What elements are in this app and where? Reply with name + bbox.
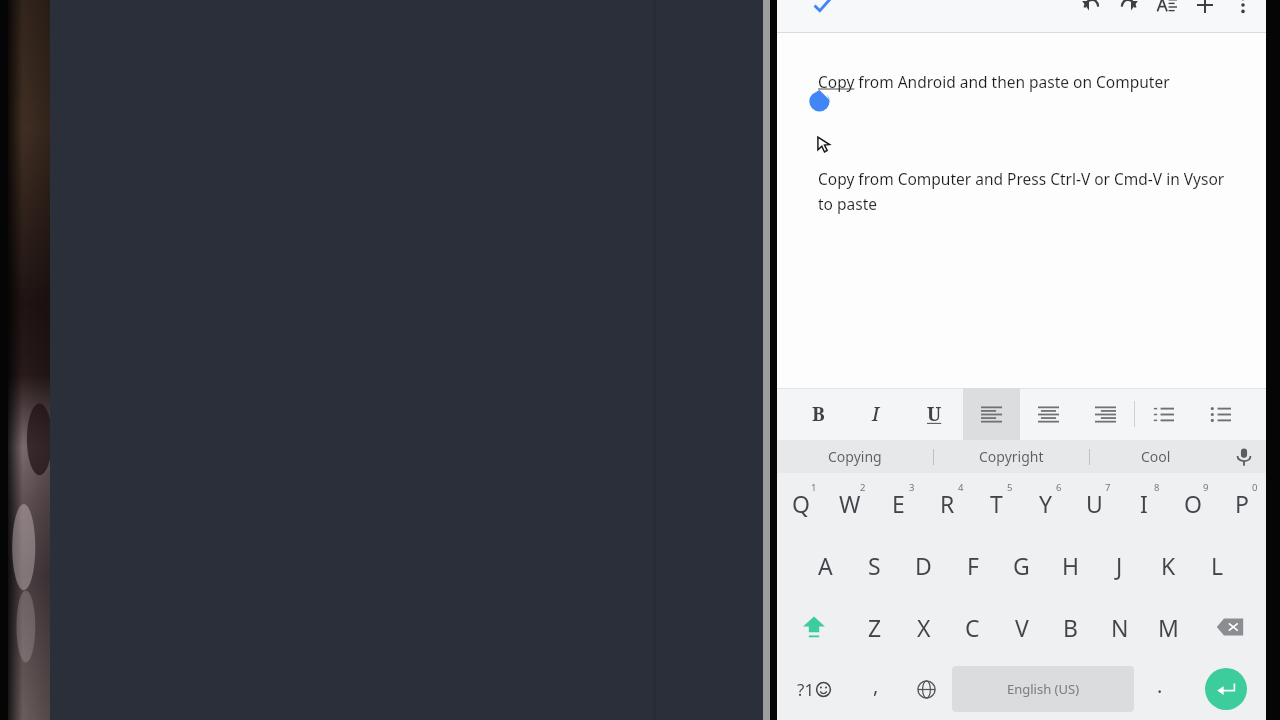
button[interactable]: B	[1046, 596, 1095, 658]
staticText: Y	[1039, 488, 1053, 519]
button[interactable]: B	[789, 388, 847, 440]
button[interactable]: T	[972, 473, 1021, 534]
button[interactable]: Enter	[1205, 668, 1247, 710]
staticText: R	[940, 488, 955, 519]
button[interactable]: I	[1119, 473, 1168, 534]
button[interactable]: J	[1095, 534, 1144, 596]
staticText: Z	[868, 612, 882, 643]
staticText: 2	[860, 481, 866, 494]
button[interactable]: K	[1144, 534, 1193, 596]
button[interactable]: Redo	[1110, 0, 1148, 21]
staticText: 6	[1056, 481, 1062, 494]
button[interactable]: Bulleted list	[1192, 388, 1249, 440]
button[interactable]: .	[1134, 658, 1185, 720]
button[interactable]: ?1	[777, 658, 850, 720]
button[interactable]: Voice input	[1222, 440, 1266, 473]
staticText: ,	[873, 672, 879, 699]
button[interactable]: U	[905, 388, 963, 440]
button[interactable]: Done	[805, 0, 839, 21]
staticText: S	[868, 550, 881, 581]
staticText: B	[812, 401, 825, 427]
button[interactable]: R	[923, 473, 972, 534]
button[interactable]: ,	[850, 658, 901, 720]
staticText: 9	[1203, 481, 1209, 494]
button[interactable]: H	[1046, 534, 1095, 596]
button[interactable]: Y	[1021, 473, 1070, 534]
button[interactable]: Align left	[963, 388, 1020, 440]
staticText: L	[1211, 550, 1224, 581]
staticText: K	[1161, 550, 1176, 581]
staticText: G	[1013, 550, 1030, 581]
button[interactable]: Undo	[1072, 0, 1110, 21]
staticText: Copy from Computer and Press Ctrl-V or C…	[818, 168, 1242, 214]
button[interactable]: G	[997, 534, 1046, 596]
button[interactable]: M	[1144, 596, 1193, 658]
staticText: J	[1116, 550, 1123, 581]
button[interactable]: X	[899, 596, 948, 658]
staticText: I	[872, 401, 880, 427]
button[interactable]: Copyright	[934, 440, 1089, 473]
staticText: A	[818, 550, 833, 581]
button[interactable]: F	[948, 534, 997, 596]
button[interactable]: P	[1217, 473, 1266, 534]
staticText: W	[839, 488, 861, 519]
staticText: .	[1157, 672, 1163, 699]
staticText: X	[917, 612, 931, 643]
staticText: T	[990, 488, 1003, 519]
staticText: N	[1111, 612, 1129, 643]
staticText: Cool	[1141, 447, 1171, 466]
staticText: E	[892, 488, 905, 519]
button[interactable]: U	[1070, 473, 1119, 534]
staticText: Q	[792, 488, 810, 519]
staticText: 3	[909, 481, 915, 494]
staticText: O	[1184, 488, 1202, 519]
button[interactable]: A	[801, 534, 850, 596]
staticText: U	[1086, 488, 1103, 519]
staticText: 7	[1105, 481, 1111, 494]
button[interactable]: Change language	[901, 658, 952, 720]
staticText: 4	[958, 481, 964, 494]
button[interactable]: N	[1095, 596, 1144, 658]
staticText: F	[967, 550, 979, 581]
staticText: H	[1062, 550, 1080, 581]
button[interactable]: D	[899, 534, 948, 596]
staticText: ?1	[797, 678, 815, 701]
button[interactable]: O	[1168, 473, 1217, 534]
staticText: U	[927, 401, 942, 427]
staticText: 1	[811, 481, 817, 494]
staticText: B	[1063, 612, 1078, 643]
button[interactable]: I	[847, 388, 905, 440]
button[interactable]: More options	[1224, 0, 1262, 21]
button[interactable]: Numbered list	[1135, 388, 1192, 440]
staticText: Copyright	[979, 447, 1044, 466]
staticText: Copying	[828, 447, 882, 466]
button[interactable]: Align right	[1077, 388, 1134, 440]
button[interactable]: Backspace	[1193, 596, 1266, 658]
staticText: M	[1158, 612, 1179, 643]
button[interactable]: E	[874, 473, 923, 534]
button[interactable]: Align center	[1020, 388, 1077, 440]
button[interactable]: Shift	[777, 596, 850, 658]
button[interactable]: Text formatting	[1148, 0, 1186, 21]
staticText: Copy from Android and then paste on Comp…	[818, 71, 1170, 92]
staticText: D	[915, 550, 932, 581]
button[interactable]: L	[1193, 534, 1242, 596]
button[interactable]: Insert	[1186, 0, 1224, 21]
button[interactable]: Q	[777, 473, 825, 534]
staticText: 5	[1007, 481, 1013, 494]
button[interactable]: Copying	[777, 440, 933, 473]
staticText: V	[1015, 612, 1029, 643]
staticText: 8	[1154, 481, 1160, 494]
staticText: C	[965, 612, 980, 643]
staticText: I	[1140, 488, 1148, 519]
button[interactable]: V	[997, 596, 1046, 658]
button[interactable]: Z	[850, 596, 899, 658]
button[interactable]: English (US)	[952, 666, 1134, 712]
button[interactable]: S	[850, 534, 899, 596]
staticText: English (US)	[1007, 680, 1080, 698]
button[interactable]: C	[948, 596, 997, 658]
button[interactable]: W	[825, 473, 874, 534]
staticText: 0	[1252, 481, 1258, 494]
staticText: P	[1235, 488, 1249, 519]
button[interactable]: Cool	[1090, 440, 1222, 473]
